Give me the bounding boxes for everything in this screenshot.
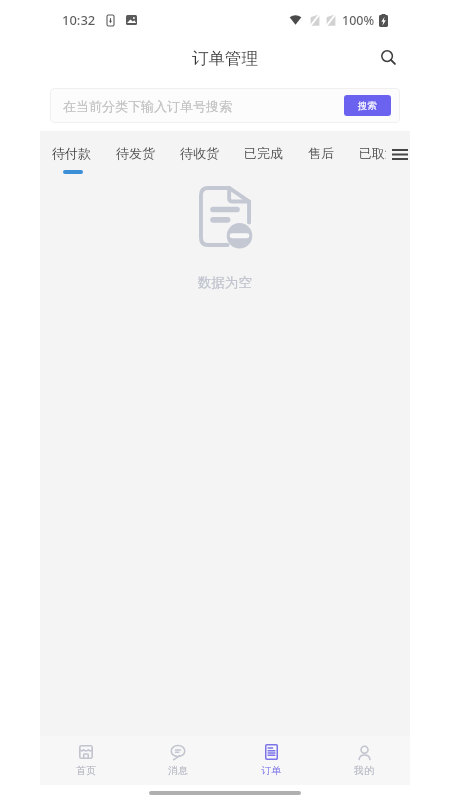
staticText: 首页 xyxy=(76,764,96,777)
button[interactable]: 消息 xyxy=(132,736,224,785)
staticText: 数据为空 xyxy=(198,274,252,291)
button[interactable]: 已取消 xyxy=(359,131,398,170)
staticText: 已取消 xyxy=(359,145,398,161)
staticText: 待付款 xyxy=(52,145,91,161)
staticText: 搜索 xyxy=(358,100,377,112)
button[interactable]: 搜索 xyxy=(344,95,391,116)
button[interactable]: 待收货 xyxy=(180,131,219,170)
button[interactable]: 首页 xyxy=(40,736,132,785)
staticText: 我的 xyxy=(354,764,374,777)
staticText: 在当前分类下输入订单号搜索 xyxy=(63,98,232,114)
staticText: 待发货 xyxy=(116,145,155,161)
button[interactable]: 订单 xyxy=(224,736,317,785)
staticText: 10:32 xyxy=(62,11,96,29)
staticText: 已完成 xyxy=(244,145,283,161)
staticText: 售后 xyxy=(308,145,334,161)
button[interactable]: 待付款 xyxy=(52,131,91,174)
button[interactable]: 售后 xyxy=(308,131,334,170)
button[interactable]: Search xyxy=(374,43,402,71)
button[interactable]: Menu xyxy=(386,142,410,166)
staticText: 订单管理 xyxy=(192,48,258,69)
button[interactable]: 已完成 xyxy=(244,131,283,170)
staticText: 消息 xyxy=(168,764,188,777)
staticText: 订单 xyxy=(261,764,281,777)
staticText: 待收货 xyxy=(180,145,219,161)
staticText: 100% xyxy=(342,12,375,29)
button[interactable]: 待发货 xyxy=(116,131,155,170)
button[interactable]: 我的 xyxy=(317,736,410,785)
